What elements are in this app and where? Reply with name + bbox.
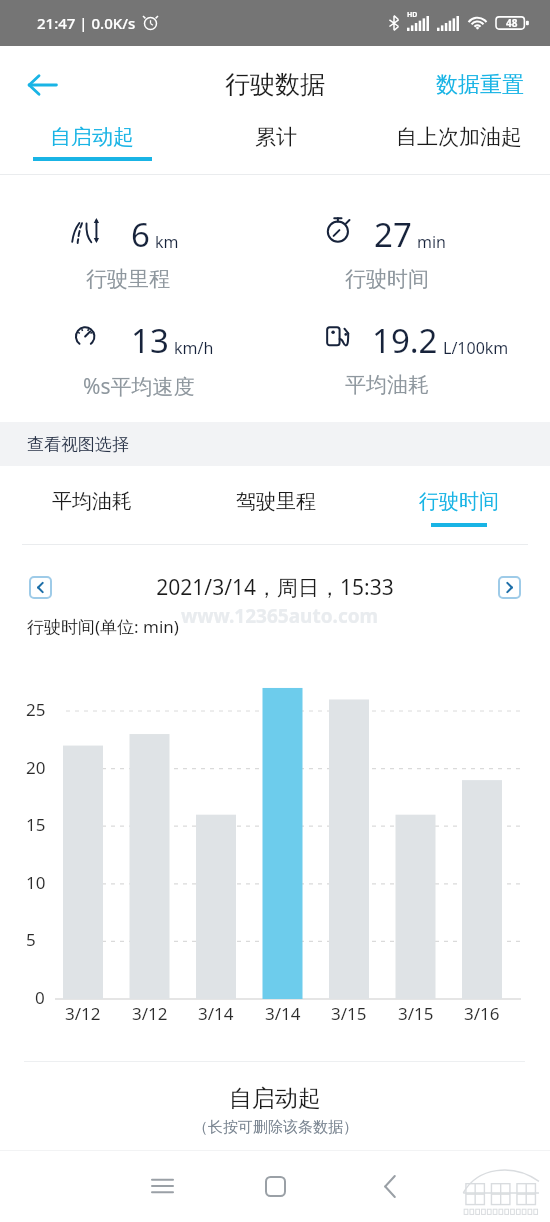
staticText: %s平均速度: [83, 372, 195, 401]
staticText: 3/15: [331, 1002, 367, 1025]
button[interactable]: 下一条: [498, 576, 521, 599]
staticText: 驾驶里程: [236, 489, 316, 514]
staticText: 15: [26, 813, 46, 836]
staticText: 自上次加油起: [396, 124, 522, 150]
staticText: 20: [26, 756, 46, 779]
button[interactable]: 返回: [14, 57, 70, 113]
button[interactable]: 返回: [364, 1160, 416, 1212]
button[interactable]: 上一条: [29, 576, 52, 599]
staticText: 19.2: [372, 318, 438, 363]
staticText: 21:47 | 0.0K/s: [37, 13, 136, 33]
staticText: 13: [131, 318, 169, 363]
staticText: 自启动起: [229, 1084, 321, 1113]
button[interactable]: 最近任务: [136, 1160, 188, 1212]
staticText: min: [417, 231, 446, 253]
staticText: 27: [374, 212, 412, 257]
button[interactable]: 数据重置: [420, 59, 550, 111]
staticText: 行驶数据: [225, 69, 325, 100]
staticText: 25: [26, 698, 46, 721]
staticText: 3/15: [398, 1002, 434, 1025]
button[interactable]: 自上次加油起: [367, 123, 550, 174]
staticText: 平均油耗: [345, 372, 429, 398]
staticText: 3/12: [65, 1002, 101, 1025]
staticText: 3/16: [464, 1002, 500, 1025]
staticText: 10: [26, 871, 46, 894]
button[interactable]: 平均油耗: [0, 466, 184, 544]
staticText: 行驶时间(单位: min): [27, 615, 179, 638]
staticText: 3/12: [132, 1002, 168, 1025]
staticText: 5: [26, 928, 36, 951]
staticText: 查看视图选择: [27, 434, 129, 455]
staticText: 2021/3/14，周日，15:33: [52, 573, 498, 602]
staticText: 3/14: [265, 1002, 301, 1025]
staticText: 自启动起: [50, 124, 134, 150]
staticText: 48: [506, 16, 518, 30]
staticText: 0: [35, 986, 45, 1009]
staticText: 6: [131, 212, 150, 257]
staticText: 行驶里程: [86, 266, 170, 292]
staticText: 行驶时间: [419, 489, 499, 514]
button[interactable]: 行驶时间: [367, 466, 550, 544]
staticText: 累计: [255, 124, 297, 150]
button[interactable]: 驾驶里程: [184, 466, 367, 544]
staticText: L/100km: [443, 337, 509, 359]
staticText: km/h: [174, 337, 214, 359]
staticText: km: [155, 231, 179, 253]
button[interactable]: 主页: [249, 1160, 301, 1212]
staticText: 平均油耗: [52, 489, 132, 514]
staticText: 3/14: [198, 1002, 234, 1025]
staticText: 数据重置: [436, 71, 524, 99]
button[interactable]: 自启动起: [0, 123, 184, 174]
staticText: www.12365auto.com: [181, 603, 379, 629]
staticText: HD: [407, 10, 418, 20]
staticText: （长按可删除该条数据）: [193, 1118, 358, 1137]
button[interactable]: 累计: [184, 123, 367, 174]
staticText: 行驶时间: [345, 266, 429, 292]
